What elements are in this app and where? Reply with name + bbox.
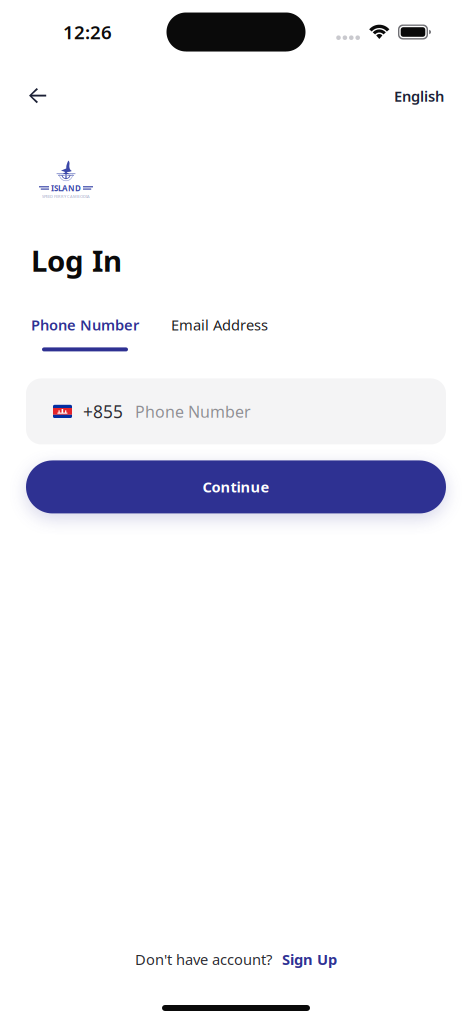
staticText: Phone Number [31,315,139,334]
staticText: Don't have account? [135,949,272,969]
button[interactable]: Back [0,78,63,114]
staticText: ISLAND [51,183,81,193]
staticText: SPEED FERRY CAMBODIA [42,194,90,199]
button[interactable]: Phone Number [0,315,155,351]
staticText: English [394,86,444,106]
button[interactable]: Continue [0,460,472,513]
staticText: Email Address [171,315,268,334]
staticText: Sign Up [282,949,337,969]
staticText: 12:26 [63,20,112,44]
button[interactable]: English [378,76,472,116]
button[interactable]: Sign Up [272,949,337,969]
button[interactable]: Email Address [155,315,284,351]
staticText: Continue [202,477,269,497]
staticText: Log In [31,241,122,280]
staticText: Phone Number [135,401,251,422]
button[interactable]: +855 [0,378,472,444]
staticText: +855 [83,400,123,423]
